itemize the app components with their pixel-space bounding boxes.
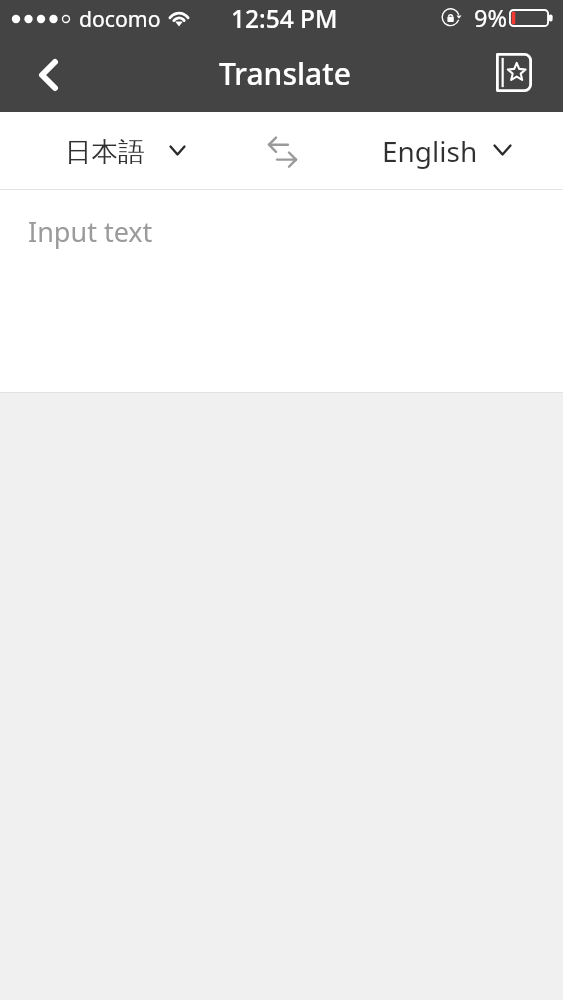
staticText: English — [382, 132, 478, 170]
staticText: 12:54 PM — [231, 2, 338, 35]
staticText: 9% — [474, 2, 507, 34]
button[interactable]: Back — [25, 52, 71, 98]
button[interactable]: English — [326, 112, 563, 190]
staticText: Input text — [28, 213, 153, 250]
button[interactable]: 日本語 — [0, 112, 236, 190]
button[interactable]: Swap languages — [236, 112, 326, 190]
button[interactable]: Input text — [0, 190, 563, 393]
staticText: Translate — [219, 53, 351, 94]
staticText: 日本語 — [65, 135, 145, 168]
staticText: docomo — [79, 4, 161, 33]
button[interactable]: Phrasebook — [491, 51, 537, 97]
